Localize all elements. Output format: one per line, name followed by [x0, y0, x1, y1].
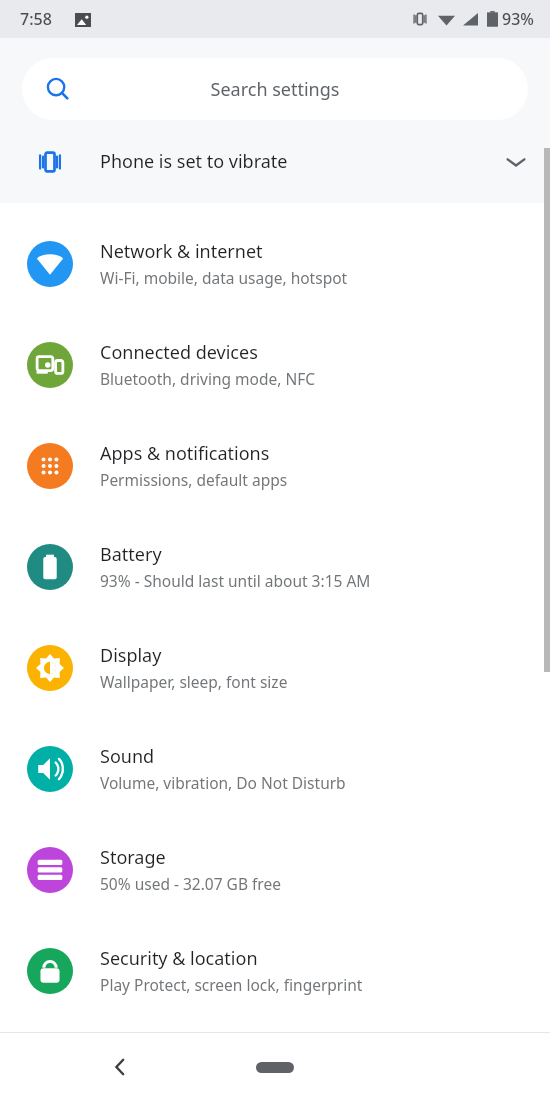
button[interactable]: Network & internet	[0, 213, 550, 314]
staticText: Play Protect, screen lock, fingerprint	[100, 974, 363, 995]
staticText: 93% - Should last until about 3:15 AM	[100, 570, 371, 591]
button[interactable]: Battery	[0, 516, 550, 617]
staticText: 93%	[502, 8, 534, 30]
staticText: Apps & notifications	[100, 441, 270, 466]
staticText: Network & internet	[100, 239, 263, 264]
staticText: Storage	[100, 845, 166, 870]
button[interactable]: Phone is set to vibrate	[0, 120, 550, 203]
staticText: Phone is set to vibrate	[100, 149, 482, 174]
staticText: Security & location	[100, 946, 258, 971]
button[interactable]: Sound	[0, 718, 550, 819]
staticText: 7:58	[20, 8, 52, 30]
button[interactable]: Home	[245, 1053, 305, 1081]
button[interactable]: Search settings	[22, 58, 528, 120]
staticText: Display	[100, 643, 162, 668]
staticText: Sound	[100, 744, 155, 769]
staticText: Volume, vibration, Do Not Disturb	[100, 772, 346, 793]
button[interactable]: Storage	[0, 819, 550, 920]
staticText: Search settings	[70, 77, 480, 102]
staticText: Wi-Fi, mobile, data usage, hotspot	[100, 267, 348, 288]
staticText: Connected devices	[100, 340, 258, 365]
button[interactable]: Security & location	[0, 920, 550, 1021]
staticText: Battery	[100, 542, 162, 567]
staticText: 50% used - 32.07 GB free	[100, 873, 281, 894]
button[interactable]: Display	[0, 617, 550, 718]
staticText: Wallpaper, sleep, font size	[100, 671, 288, 692]
staticText: Bluetooth, driving mode, NFC	[100, 368, 316, 389]
button[interactable]: Back	[98, 1045, 142, 1089]
button[interactable]: Connected devices	[0, 314, 550, 415]
staticText: Permissions, default apps	[100, 469, 288, 490]
button[interactable]: Apps & notifications	[0, 415, 550, 516]
